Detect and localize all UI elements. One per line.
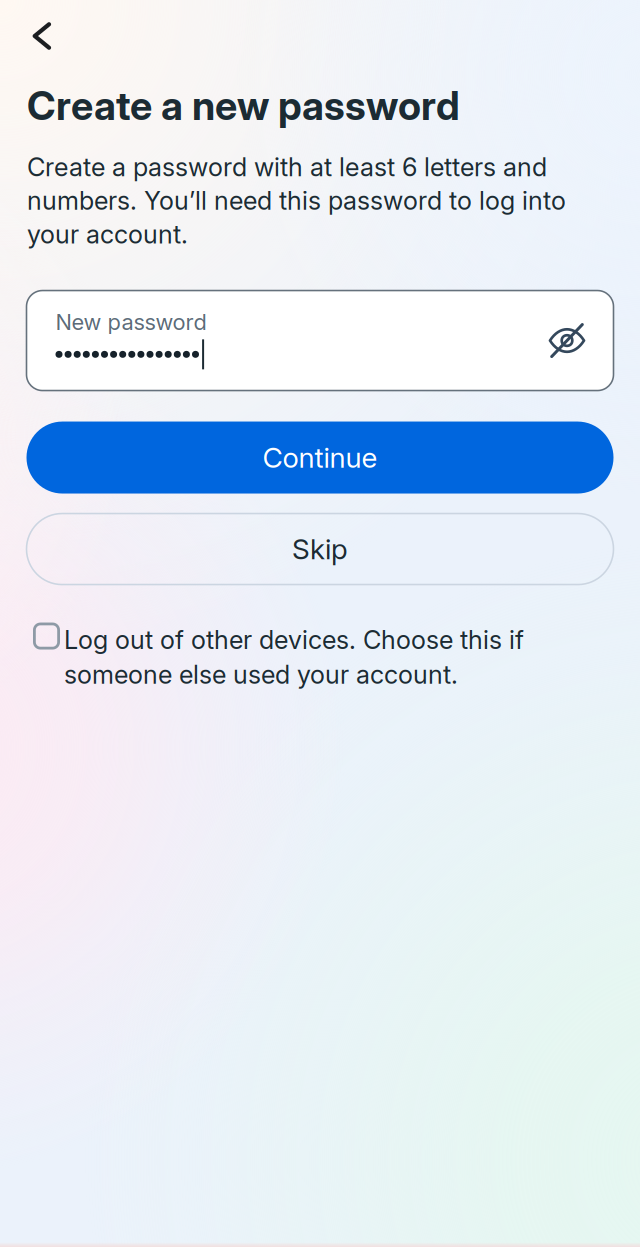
- staticText: Continue: [262, 441, 377, 474]
- staticText: Create a new password: [27, 82, 460, 130]
- staticText: Log out of other devices. Choose this if…: [64, 624, 524, 690]
- staticText: New password: [55, 309, 206, 335]
- button[interactable]: Skip: [26, 513, 613, 584]
- button[interactable]: Log out of other devices. Choose this if…: [33, 624, 534, 690]
- button[interactable]: Continue: [26, 421, 613, 493]
- button[interactable]: Back: [19, 13, 65, 59]
- staticText: Skip: [292, 532, 348, 566]
- staticText: Create a password with at least 6 letter…: [27, 152, 566, 250]
